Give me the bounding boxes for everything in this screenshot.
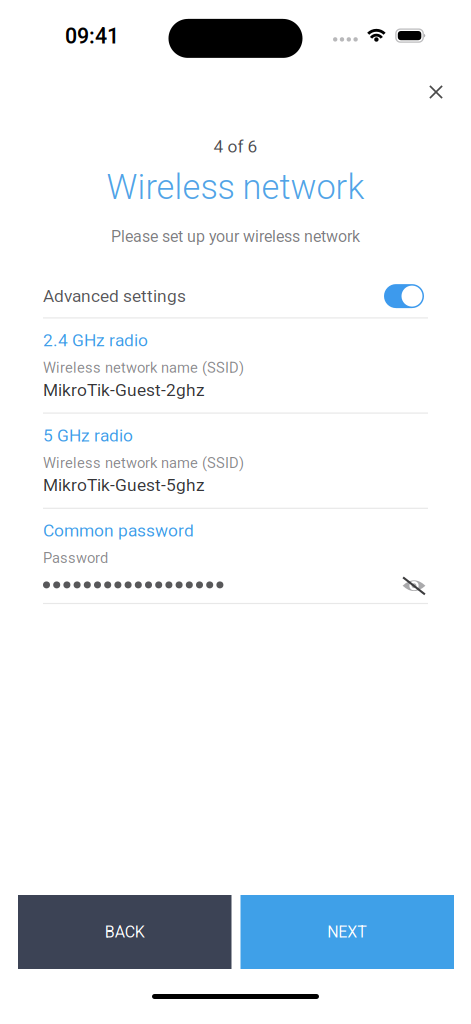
staticText: 09:41 <box>65 24 119 49</box>
staticText: Wireless network <box>106 167 364 207</box>
staticText: 2.4 GHz radio <box>43 330 148 350</box>
button[interactable]: BACK <box>18 895 231 969</box>
staticText: Common password <box>43 520 194 541</box>
button[interactable]: Advanced settings <box>43 247 428 310</box>
button[interactable]: NEXT <box>240 895 454 969</box>
button[interactable]: Show password <box>402 566 428 594</box>
staticText: 4 of 6 <box>213 136 257 157</box>
staticText: MikroTik-Guest-2ghz <box>43 380 205 400</box>
staticText: Wireless network name (SSID) <box>43 359 244 376</box>
button[interactable]: Close <box>420 76 452 108</box>
staticText: Advanced settings <box>43 286 186 306</box>
staticText: BACK <box>105 923 145 941</box>
staticText: MikroTik-Guest-5ghz <box>43 475 205 495</box>
staticText: Password <box>43 549 108 567</box>
staticText: Please set up your wireless network <box>111 227 360 246</box>
staticText: NEXT <box>327 923 367 941</box>
staticText: 5 GHz radio <box>43 425 133 446</box>
staticText: Wireless network name (SSID) <box>43 454 244 471</box>
